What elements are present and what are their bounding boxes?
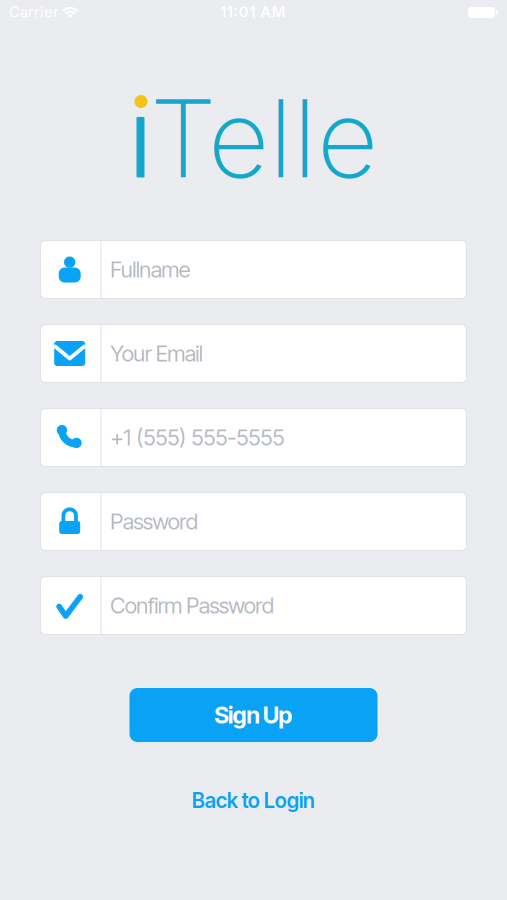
staticText: Sign Up: [214, 701, 293, 729]
staticText: Fullname: [110, 256, 191, 283]
staticText: Your Email: [110, 340, 203, 367]
button[interactable]: Confirm Password: [0, 0, 507, 900]
button[interactable]: Your Email: [0, 0, 507, 900]
button[interactable]: Password: [0, 0, 507, 900]
staticText: Telle: [150, 76, 378, 201]
staticText: Back to Login: [191, 788, 315, 813]
staticText: +1 (555) 555-5555: [110, 424, 284, 451]
button[interactable]: Back to Login: [191, 788, 315, 813]
button[interactable]: Sign Up: [129, 688, 377, 742]
button[interactable]: Fullname: [0, 0, 507, 900]
staticText: Password: [110, 508, 198, 535]
staticText: Carrier: [9, 3, 59, 21]
staticText: 11:01 AM: [220, 3, 286, 21]
staticText: Confirm Password: [110, 592, 274, 619]
button[interactable]: +1 (555) 555-5555: [0, 0, 507, 900]
